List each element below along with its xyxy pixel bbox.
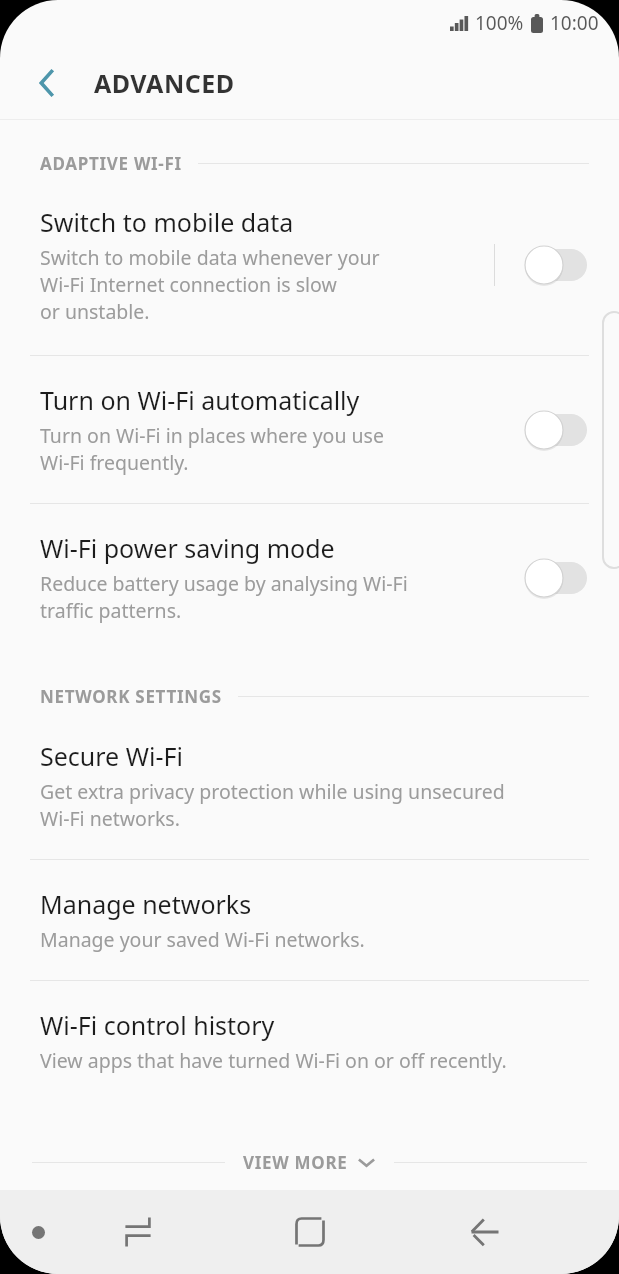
button[interactable]: Off <box>523 409 589 451</box>
staticText: Wi-Fi Internet connection is slow <box>40 271 337 298</box>
staticText: Reduce battery usage by analysing Wi-Fi <box>40 570 408 597</box>
button[interactable]: Manage networks <box>0 860 619 980</box>
button[interactable]: VIEW MORE <box>0 1151 619 1174</box>
staticText: traffic patterns. <box>40 597 182 624</box>
staticText: Get extra privacy protection while using… <box>40 778 505 805</box>
button[interactable]: Back <box>453 1200 517 1264</box>
staticText: ADAPTIVE WI-FI <box>40 152 182 175</box>
staticText: Wi-Fi networks. <box>40 805 180 832</box>
button[interactable]: Recent apps <box>106 1200 170 1264</box>
staticText: or unstable. <box>40 298 150 325</box>
staticText: Manage your saved Wi-Fi networks. <box>40 926 365 953</box>
button[interactable]: Turn on Wi-Fi automatically <box>0 356 619 503</box>
button[interactable]: Secure Wi-Fi <box>0 708 619 859</box>
button[interactable]: Switch to mobile data <box>0 175 619 355</box>
button[interactable]: Home <box>278 1200 342 1264</box>
staticText: Switch to mobile data whenever your <box>40 244 380 271</box>
button[interactable]: Off <box>523 244 589 286</box>
button[interactable]: Keyboard indicator <box>14 1208 62 1256</box>
staticText: Wi-Fi control history <box>40 1008 275 1042</box>
staticText: 100% <box>475 10 524 36</box>
staticText: Switch to mobile data <box>40 205 294 239</box>
staticText: 10:00 <box>550 10 599 36</box>
staticText: VIEW MORE <box>243 1151 348 1174</box>
staticText: Secure Wi-Fi <box>40 739 183 773</box>
button[interactable]: Wi-Fi power saving mode <box>0 504 619 651</box>
staticText: Turn on Wi-Fi in places where you use <box>40 422 384 449</box>
staticText: ADVANCED <box>94 66 235 100</box>
button[interactable]: Navigate up <box>16 52 78 114</box>
staticText: NETWORK SETTINGS <box>40 685 222 708</box>
button[interactable]: Off <box>523 557 589 599</box>
button[interactable]: Wi-Fi control history <box>0 981 619 1096</box>
staticText: Turn on Wi-Fi automatically <box>40 383 360 417</box>
staticText: View apps that have turned Wi-Fi on or o… <box>40 1047 507 1074</box>
staticText: Wi-Fi power saving mode <box>40 531 335 565</box>
staticText: Wi-Fi frequently. <box>40 449 189 476</box>
staticText: Manage networks <box>40 887 252 921</box>
